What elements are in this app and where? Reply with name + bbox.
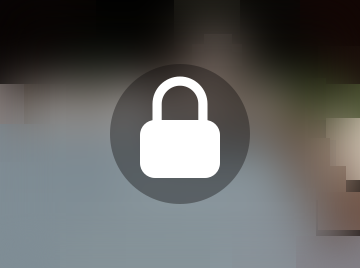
button[interactable]: Unlock photo bbox=[0, 0, 360, 268]
